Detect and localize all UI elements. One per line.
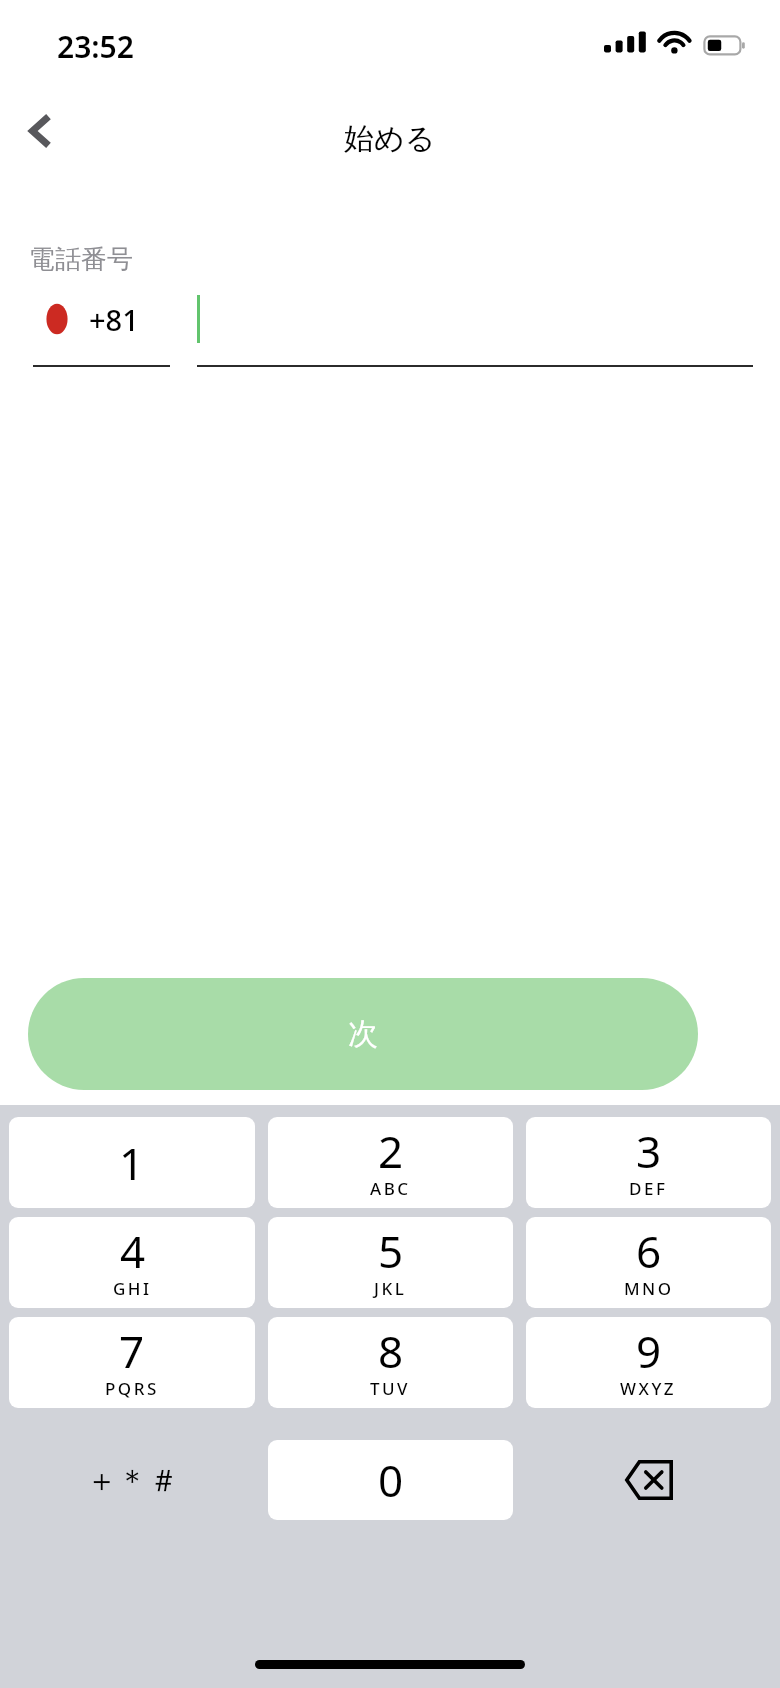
button[interactable]: 9 [526,1317,771,1408]
button[interactable]: 0 [268,1440,513,1520]
staticText: TUV [370,1377,411,1400]
staticText: MNO [624,1277,674,1300]
button[interactable]: 4 [9,1217,255,1308]
button[interactable]: 7 [9,1317,255,1408]
button[interactable]: Backspace [526,1440,771,1520]
button[interactable]: Symbols [9,1440,255,1520]
staticText: 0 [378,1450,404,1510]
button[interactable]: 3 [526,1117,771,1208]
button[interactable]: 2 [268,1117,513,1208]
staticText: GHI [113,1277,152,1300]
staticText: 5 [378,1221,404,1281]
staticText: WXYZ [620,1377,677,1400]
button[interactable]: 6 [526,1217,771,1308]
staticText: 次 [348,1015,378,1053]
button[interactable]: +81 [33,290,170,367]
button[interactable]: 8 [268,1317,513,1408]
staticText: PQRS [105,1377,159,1400]
staticText: 23:52 [57,26,134,67]
staticText: 6 [636,1221,662,1281]
staticText: 始める [344,120,436,158]
staticText: JKL [374,1277,407,1300]
staticText: 4 [120,1221,146,1281]
staticText: 電話番号 [29,243,133,276]
button[interactable]: 1 [9,1117,255,1208]
staticText: ＋＊＃ [86,1461,179,1500]
staticText: +81 [89,300,139,339]
button[interactable]: 次 [28,978,698,1090]
staticText: ABC [370,1177,411,1200]
staticText: DEF [629,1177,668,1200]
staticText: 1 [119,1133,145,1193]
button[interactable]: Back [8,98,74,164]
staticText: 9 [636,1321,662,1381]
staticText: 2 [378,1121,404,1181]
button[interactable] [197,290,753,367]
staticText: 3 [636,1121,662,1181]
staticText: 8 [378,1321,404,1381]
button[interactable]: 5 [268,1217,513,1308]
staticText: 7 [119,1321,145,1381]
